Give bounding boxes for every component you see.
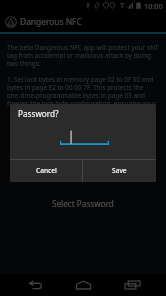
button[interactable]: Dangerous NFC bbox=[0, 11, 166, 32]
staticText: Password? bbox=[18, 108, 59, 119]
button[interactable]: Cancel bbox=[10, 160, 82, 182]
button[interactable]: Home bbox=[68, 274, 98, 296]
button[interactable]: Back bbox=[19, 274, 49, 296]
staticText: 10:00 bbox=[144, 1, 163, 11]
staticText: The beta Dangerous NFC app will protect … bbox=[7, 43, 159, 68]
staticText: 1. Set lock bytes in memory page 02 to 0… bbox=[7, 75, 156, 108]
button[interactable]: Recents bbox=[117, 274, 147, 296]
staticText: Cancel bbox=[36, 166, 57, 175]
button[interactable]: Select Password bbox=[40, 193, 126, 214]
button[interactable]: Save bbox=[83, 160, 156, 182]
staticText: Select Password bbox=[52, 198, 114, 209]
staticText: Save bbox=[112, 166, 127, 175]
staticText: Dangerous NFC bbox=[20, 16, 82, 27]
